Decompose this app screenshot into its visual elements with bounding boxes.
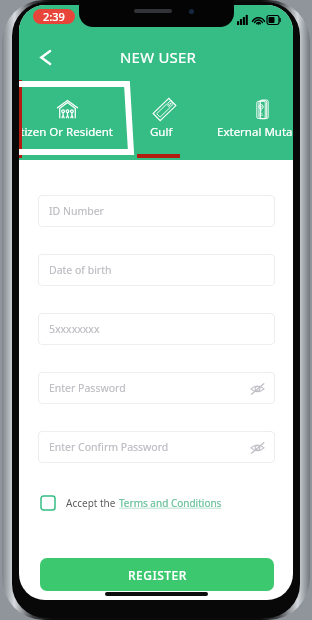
staticText: Accept the	[66, 496, 119, 510]
button[interactable]: ID Number	[38, 195, 275, 227]
staticText: Date of birth	[49, 263, 112, 277]
button[interactable]: REGISTER	[40, 558, 274, 591]
staticText: ID Number	[49, 204, 104, 218]
staticText: External Mutamad	[217, 124, 293, 140]
staticText: Enter Password	[49, 381, 126, 395]
button[interactable]: Gulf	[86, 80, 236, 160]
staticText: REGISTER	[128, 567, 187, 583]
staticText: 5xxxxxxxx	[49, 322, 100, 336]
staticText: 2:39	[43, 9, 65, 24]
button[interactable]: Enter Password	[38, 372, 275, 404]
button[interactable]: Show password	[250, 440, 265, 455]
button[interactable]: External Mutamad	[192, 80, 293, 160]
button[interactable]: Citizen Or Resident	[19, 80, 136, 160]
button[interactable]: Back	[32, 42, 58, 72]
button[interactable]: Terms and Conditions	[119, 496, 222, 510]
staticText: NEW USER	[120, 47, 197, 67]
button[interactable]: Date of birth	[38, 254, 275, 286]
button[interactable]: Accept the	[41, 493, 222, 513]
staticText: Citizen Or Resident	[19, 124, 113, 140]
button[interactable]: Show password	[250, 381, 265, 396]
staticText: Enter Confirm Password	[49, 440, 169, 454]
button[interactable]: Enter Confirm Password	[38, 431, 275, 463]
button[interactable]: 5xxxxxxxx	[38, 313, 275, 345]
staticText: Gulf	[150, 124, 173, 140]
